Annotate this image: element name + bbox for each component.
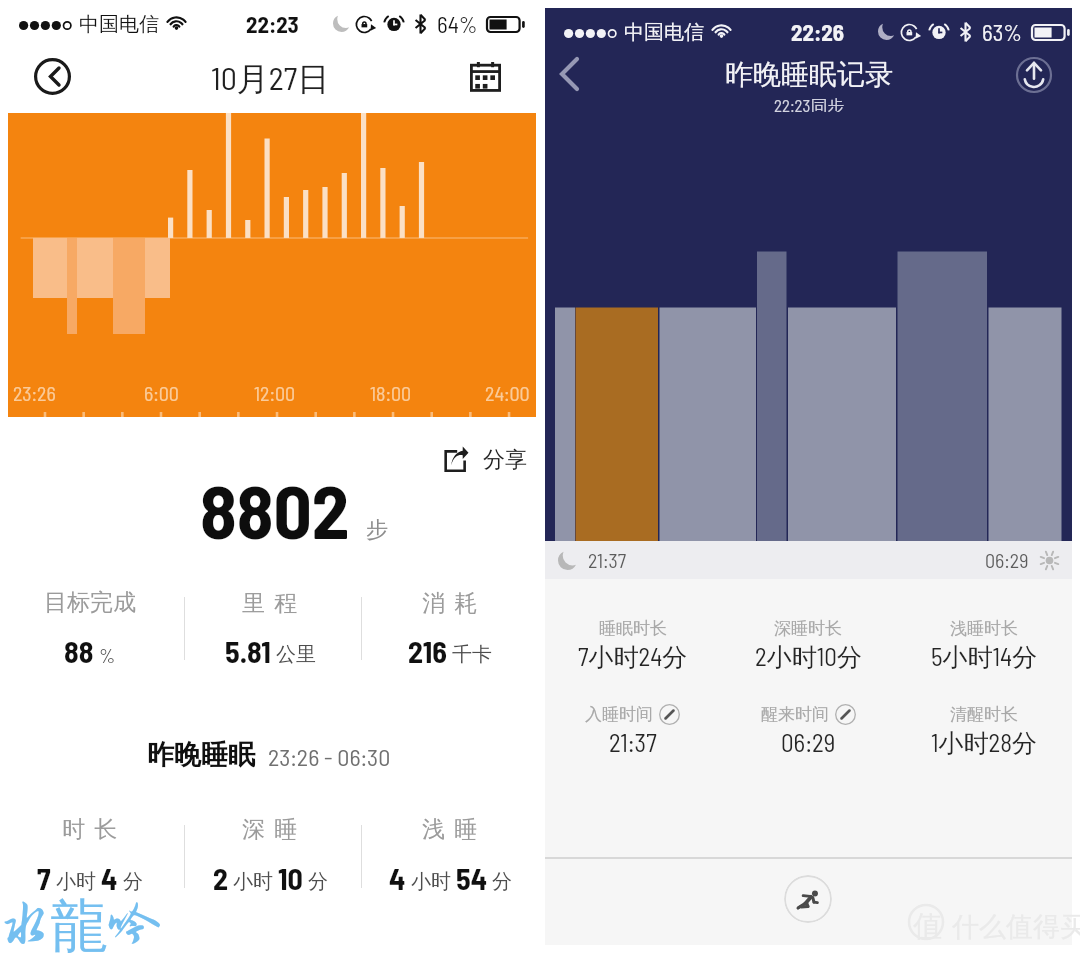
staticText: 值 [913,908,942,945]
staticText: 分享 [483,446,527,474]
button[interactable]: 清醒时长 [896,704,1072,759]
staticText: 分 [308,869,328,894]
staticText: 水龍吟 [0,890,161,953]
staticText: 睡眠时长 [599,618,667,639]
staticText: 醒来时间 [761,704,829,725]
staticText: 21:37 [609,727,657,757]
button[interactable]: 5.81 [180,633,360,669]
staticText: 7 [37,860,51,896]
staticText: 88 [64,633,94,669]
button[interactable]: 2 [180,860,360,896]
button[interactable]: 4 [360,860,540,896]
staticText: 分 [492,869,512,894]
staticText: 216 [408,633,447,669]
staticText: 2小时10分 [755,641,862,673]
staticText: 54 [456,860,487,896]
staticText: 什么值得买 [952,910,1080,944]
staticText: 12:00 [254,381,296,405]
button[interactable]: 8802 [200,464,350,554]
staticText: 22:23 [246,10,299,38]
staticText: 昨晚睡眠 [147,738,255,772]
staticText: 入睡时间 [585,704,653,725]
button[interactable]: 7 [0,860,180,896]
button[interactable]: Sync [1016,57,1052,93]
staticText: 22:23同步 [774,95,845,117]
button[interactable]: Activity [784,875,832,923]
staticText: 24:00 [485,381,530,405]
staticText: 23:26 - 06:30 [268,742,391,771]
staticText: 清醒时长 [950,704,1018,725]
staticText: 64% [437,10,478,38]
staticText: 06:29 [781,727,836,757]
staticText: 深 睡 [242,814,298,844]
staticText: 小时 [411,869,451,894]
button[interactable]: Back [34,58,71,95]
button[interactable]: 浅睡时长 [896,618,1072,673]
staticText: 63% [982,18,1022,46]
staticText: 10月27日 [211,58,330,100]
staticText: 昨晚睡眠记录 [725,57,893,92]
staticText: 时 长 [62,814,118,844]
staticText: 18:00 [370,381,412,405]
staticText: 23:26 [13,381,56,405]
staticText: 7小时24分 [578,641,688,673]
button[interactable]: Calendar [470,62,501,91]
staticText: 10 [278,860,303,896]
button[interactable]: Back [545,50,589,98]
button[interactable]: 216 [360,633,540,669]
staticText: 6:00 [144,381,179,405]
staticText: 浅 睡 [422,814,478,844]
staticText: 2 [213,860,228,896]
staticText: 4 [389,860,406,896]
button[interactable]: 睡眠时长 [545,618,720,673]
staticText: 5小时14分 [931,641,1038,673]
staticText: 22:26 [791,18,844,46]
staticText: 里 程 [242,588,298,618]
staticText: 步 [366,516,388,544]
staticText: 5.81 [225,633,271,669]
button[interactable]: 88 [0,633,180,669]
staticText: 公里 [276,642,316,667]
staticText: 中国电信 [624,20,704,45]
staticText: 中国电信 [79,12,159,37]
staticText: 深睡时长 [774,618,842,639]
staticText: 06:29 [985,548,1029,572]
button[interactable]: 深睡时长 [720,618,896,673]
staticText: 1小时28分 [931,727,1038,759]
button[interactable]: 醒来时间 [720,704,896,757]
staticText: 分 [123,869,143,894]
button[interactable]: 分享 [438,441,533,479]
staticText: 千卡 [452,642,492,667]
staticText: 21:37 [588,548,627,572]
staticText: % [99,643,116,667]
staticText: 小时 [233,869,273,894]
staticText: 目标完成 [44,588,136,617]
staticText: 浅睡时长 [950,618,1018,639]
staticText: 小时 [56,869,96,894]
staticText: 4 [101,860,118,896]
button[interactable]: 昨晚睡眠 [147,738,255,772]
button[interactable]: 入睡时间 [545,704,720,757]
staticText: 消 耗 [422,588,478,618]
